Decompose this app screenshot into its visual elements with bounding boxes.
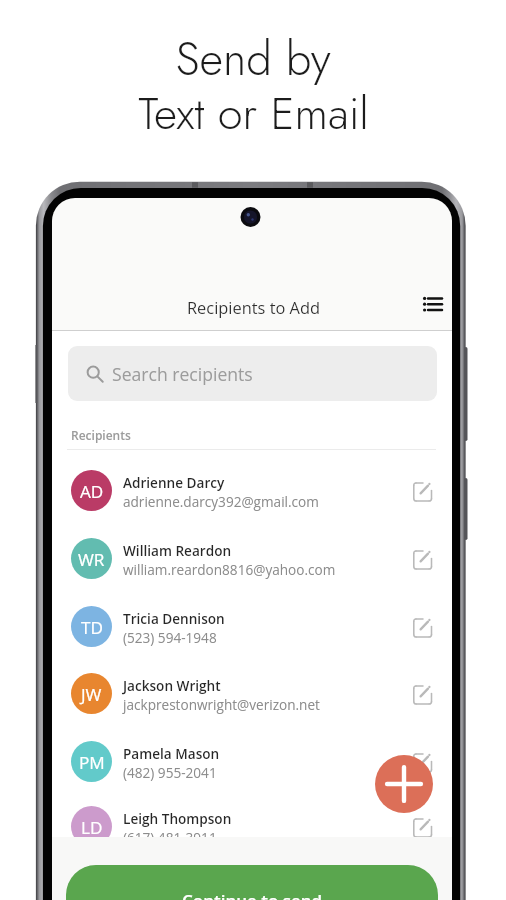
staticText: adrienne.darcy392@gmail.com — [123, 492, 319, 511]
button[interactable]: PM — [52, 727, 452, 795]
button[interactable]: Edit Jackson Wright — [403, 673, 443, 713]
button[interactable]: Edit Tricia Dennison — [403, 606, 443, 646]
button[interactable]: LD — [52, 792, 452, 860]
staticText: WR — [78, 548, 105, 571]
staticText: william.reardon8816@yahoo.com — [123, 560, 336, 579]
staticText: PM — [79, 751, 105, 774]
button[interactable]: List options — [414, 285, 451, 322]
staticText: Recipients to Add — [187, 296, 321, 318]
button[interactable]: JW — [52, 659, 452, 727]
button[interactable]: Edit Pamela Mason — [403, 741, 443, 781]
staticText: Pamela Mason — [123, 744, 220, 763]
staticText: Jackson Wright — [123, 676, 221, 695]
button[interactable]: Search recipients — [68, 346, 437, 401]
button[interactable]: AD — [52, 456, 452, 524]
staticText: LD — [81, 816, 103, 839]
staticText: Search recipients — [112, 362, 253, 386]
button[interactable]: Continue to send — [66, 865, 438, 900]
staticText: (482) 955-2041 — [123, 763, 217, 782]
button[interactable]: Edit Adrienne Darcy — [403, 470, 443, 510]
button[interactable]: Add recipient — [375, 755, 433, 813]
staticText: jackprestonwright@verizon.net — [123, 695, 320, 714]
button[interactable]: Edit William Reardon — [403, 538, 443, 578]
staticText: Send by — [175, 26, 331, 92]
staticText: AD — [80, 480, 104, 503]
button[interactable]: TD — [52, 592, 452, 660]
staticText: JW — [81, 683, 102, 706]
staticText: Adrienne Darcy — [123, 473, 225, 492]
staticText: William Reardon — [123, 541, 232, 560]
staticText: Recipients — [71, 427, 131, 443]
button[interactable]: WR — [52, 524, 452, 592]
button[interactable]: Edit Leigh Thompson — [403, 806, 443, 846]
staticText: TD — [81, 616, 103, 639]
staticText: Text or Email — [138, 81, 369, 146]
staticText: Leigh Thompson — [123, 809, 232, 828]
staticText: Continue to send — [182, 889, 323, 900]
staticText: (617) 481-3911 — [123, 828, 217, 847]
staticText: (523) 594-1948 — [123, 628, 217, 647]
staticText: Tricia Dennison — [123, 609, 225, 628]
